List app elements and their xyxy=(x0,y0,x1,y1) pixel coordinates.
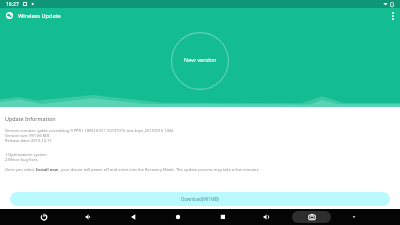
button[interactable]: Screenshot xyxy=(292,211,331,223)
staticText: 16:27 xyxy=(6,1,19,8)
staticText: , your device will power off and enter i… xyxy=(59,167,260,172)
button[interactable]: Power xyxy=(34,209,54,225)
button[interactable]: Home xyxy=(168,209,188,225)
staticText: Install now xyxy=(36,167,59,172)
button[interactable]: Volume down xyxy=(78,209,98,225)
staticText: Update Information xyxy=(5,115,56,122)
staticText: Once you select xyxy=(5,167,36,172)
staticText: Download(991MB) xyxy=(181,196,219,202)
staticText: Version number: galde-userdebug 9 PPR1.1… xyxy=(5,128,174,133)
button[interactable]: Expand xyxy=(344,209,364,225)
staticText: Wireless Update xyxy=(18,12,61,20)
button[interactable]: Recents xyxy=(213,209,233,225)
button[interactable]: More options xyxy=(385,8,400,23)
button[interactable]: Download(991MB) xyxy=(10,192,390,206)
button[interactable]: New version xyxy=(171,32,229,90)
staticText: New version xyxy=(184,56,217,64)
button[interactable]: Back xyxy=(123,209,143,225)
staticText: 1.Optimization system xyxy=(5,152,47,157)
staticText: Version size: 991.86 MB xyxy=(5,133,50,138)
button[interactable]: Volume up xyxy=(256,209,276,225)
staticText: Release date: 2019-12-11 xyxy=(5,138,52,143)
staticText: 2.Minor bug fixes xyxy=(5,157,38,162)
